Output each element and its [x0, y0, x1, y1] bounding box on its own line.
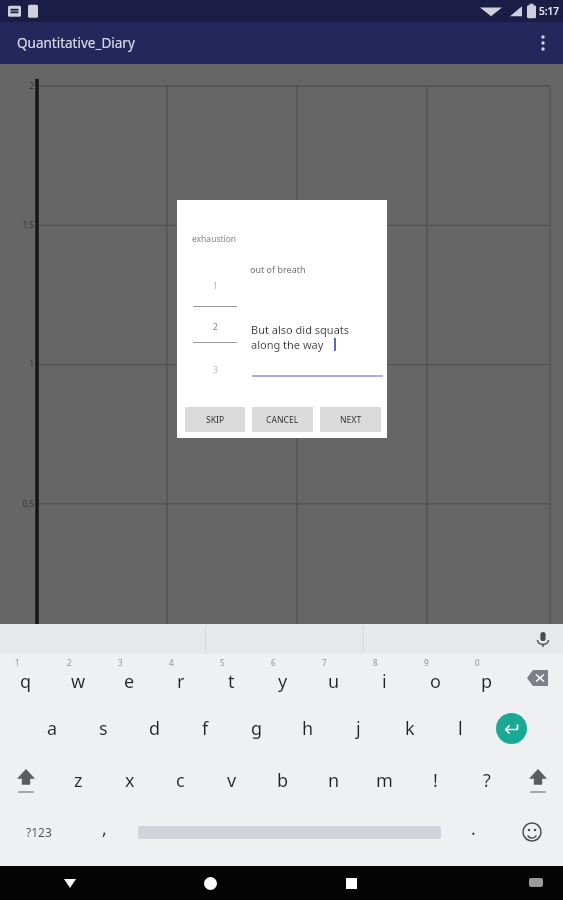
staticText: NEXT — [340, 414, 362, 426]
button[interactable]: k — [384, 702, 435, 754]
staticText: a — [47, 716, 58, 741]
staticText: n — [328, 768, 340, 793]
staticText: v — [227, 768, 237, 793]
button[interactable]: ? — [461, 754, 512, 806]
staticText: ? — [483, 768, 491, 793]
button[interactable]: l — [435, 702, 486, 754]
staticText: h — [302, 716, 314, 741]
staticText: z — [74, 768, 83, 793]
button[interactable]: 7 — [308, 654, 359, 702]
staticText: 9 — [424, 657, 429, 668]
staticText: b — [277, 768, 289, 793]
staticText: Quantitative_Diary — [17, 34, 135, 52]
staticText: l — [458, 716, 463, 741]
staticText: u — [328, 669, 340, 694]
button[interactable]: b — [257, 754, 308, 806]
staticText: 3 — [118, 657, 123, 668]
staticText: 1.5 — [13, 219, 34, 230]
staticText: But also did squats along the way — [251, 322, 350, 352]
staticText: 0.5 — [13, 498, 34, 509]
button[interactable]: Backspace — [512, 654, 563, 702]
staticText: 8 — [373, 657, 378, 668]
button[interactable]: c — [155, 754, 206, 806]
button[interactable]: f — [180, 702, 231, 754]
staticText: 7 — [322, 657, 327, 668]
button[interactable]: ?123 — [0, 806, 78, 858]
staticText: , — [102, 816, 107, 841]
staticText: 6 — [271, 657, 276, 668]
button[interactable]: 3 — [104, 654, 155, 702]
button[interactable]: 0 — [461, 654, 512, 702]
staticText: j — [356, 716, 361, 741]
staticText: 3 — [213, 364, 218, 376]
staticText: r — [177, 669, 185, 694]
staticText: . — [471, 816, 476, 841]
staticText: d — [149, 716, 161, 741]
staticText: 1 — [13, 358, 34, 369]
button[interactable]: 4 — [155, 654, 206, 702]
button[interactable]: j — [333, 702, 384, 754]
button[interactable]: d — [129, 702, 180, 754]
button[interactable]: s — [78, 702, 129, 754]
staticText: 1 — [213, 280, 218, 292]
button[interactable]: , — [78, 806, 131, 858]
staticText: p — [481, 669, 493, 694]
button[interactable]: n — [308, 754, 359, 806]
button[interactable]: SKIP — [185, 407, 245, 432]
button[interactable]: 9 — [410, 654, 461, 702]
staticText: 2 — [213, 321, 218, 333]
button[interactable]: h — [282, 702, 333, 754]
button[interactable]: ! — [410, 754, 461, 806]
staticText: o — [430, 669, 441, 694]
button[interactable]: x — [104, 754, 155, 806]
staticText: e — [124, 669, 135, 694]
staticText: y — [278, 669, 288, 694]
staticText: x — [125, 768, 135, 793]
button[interactable]: 5 — [206, 654, 257, 702]
button[interactable]: Shift — [512, 754, 563, 806]
staticText: 0 — [475, 657, 480, 668]
button[interactable]: . — [447, 806, 500, 858]
button[interactable]: Shift — [0, 754, 52, 806]
staticText: 4 — [169, 657, 174, 668]
staticText: w — [71, 669, 86, 694]
staticText: 5:17 — [539, 4, 559, 18]
staticText: exhaustion — [192, 233, 237, 245]
button[interactable]: Enter — [486, 702, 537, 754]
staticText: 2 — [13, 80, 34, 91]
button[interactable]: Emoji — [500, 806, 563, 858]
staticText: CANCEL — [266, 414, 299, 426]
button[interactable]: NEXT — [320, 407, 381, 432]
staticText: m — [376, 768, 393, 793]
button[interactable]: 8 — [359, 654, 410, 702]
staticText: SKIP — [206, 414, 225, 426]
button[interactable]: Recent apps — [281, 866, 422, 900]
button[interactable]: 6 — [257, 654, 308, 702]
staticText: k — [405, 716, 415, 741]
staticText: out of breath — [250, 263, 306, 275]
staticText: i — [382, 669, 387, 694]
staticText: ! — [433, 768, 438, 793]
button[interactable]: a — [27, 702, 78, 754]
staticText: ?123 — [26, 824, 52, 840]
button[interactable]: Voice input — [523, 624, 563, 654]
staticText: q — [20, 669, 32, 694]
button[interactable]: g — [231, 702, 282, 754]
staticText: 2 — [67, 657, 72, 668]
staticText: s — [99, 716, 108, 741]
button[interactable]: CANCEL — [252, 407, 313, 432]
staticText: t — [228, 669, 235, 694]
staticText: c — [176, 768, 185, 793]
button[interactable]: Home — [140, 866, 281, 900]
button[interactable]: v — [206, 754, 257, 806]
button[interactable]: 2 — [52, 654, 104, 702]
button[interactable]: More options — [519, 22, 563, 64]
staticText: f — [202, 716, 209, 741]
button[interactable]: Space — [131, 806, 447, 858]
button[interactable]: 1 — [0, 654, 52, 702]
button[interactable]: Back — [0, 866, 140, 900]
button[interactable]: m — [359, 754, 410, 806]
staticText: 1 — [15, 657, 20, 668]
button[interactable]: z — [52, 754, 104, 806]
staticText: g — [251, 716, 263, 741]
